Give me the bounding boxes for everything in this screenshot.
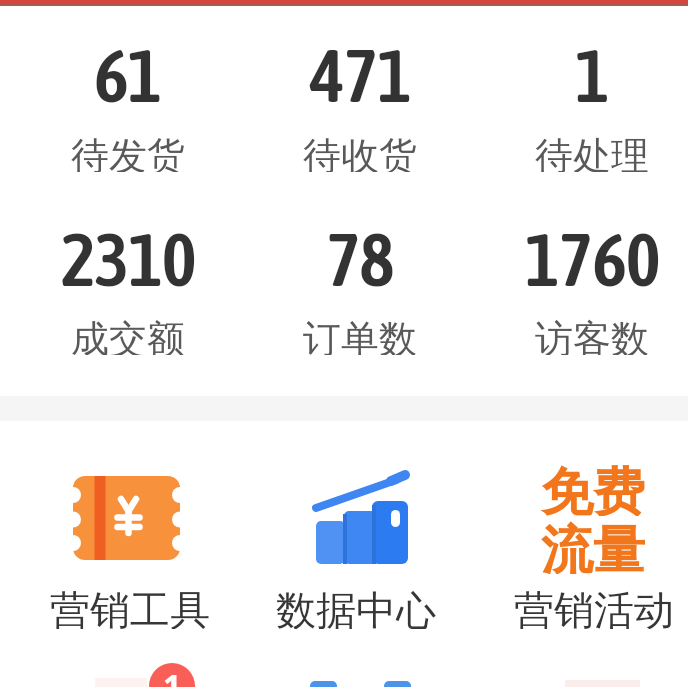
staticText: 471 [310, 33, 411, 118]
staticText: 1760 [525, 217, 660, 302]
button[interactable]: 1760 [482, 214, 688, 365]
staticText: 1 [163, 664, 182, 687]
staticText: 营销活动 [514, 585, 674, 629]
button[interactable]: 1 [482, 30, 688, 182]
staticText: 流量 [541, 518, 645, 574]
staticText: 1 [575, 33, 609, 118]
staticText: 营销工具 [50, 585, 210, 629]
button[interactable]: 2310 [18, 214, 238, 365]
staticText: 78 [326, 217, 394, 302]
button[interactable]: 营销工具 [17, 458, 243, 640]
staticText: 订单数 [303, 315, 417, 355]
staticText: 待发货 [71, 132, 185, 172]
staticText: 2310 [61, 217, 196, 302]
button[interactable]: 78 [250, 214, 470, 365]
button[interactable]: 免费 [481, 458, 688, 640]
staticText: 待处理 [535, 132, 649, 172]
button[interactable]: 数据中心 [243, 458, 469, 640]
button[interactable]: 471 [250, 30, 470, 182]
staticText: 免费 [541, 460, 645, 516]
staticText: 数据中心 [276, 585, 436, 629]
button[interactable]: 61 [18, 30, 238, 182]
staticText: 61 [94, 33, 162, 118]
staticText: 待收货 [303, 132, 417, 172]
staticText: 访客数 [535, 315, 649, 355]
staticText: 成交额 [71, 315, 185, 355]
